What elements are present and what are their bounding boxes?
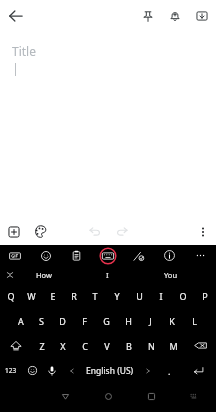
staticText: D [59,315,66,327]
staticText: You [164,270,178,280]
staticText: O [179,290,187,302]
button[interactable]: Q [0,283,21,308]
staticText: N [148,340,155,352]
button[interactable]: A [10,308,31,333]
button[interactable]: T [84,283,106,308]
staticText: V [104,340,110,352]
button[interactable]: Z [31,333,52,358]
button[interactable]: I [76,266,139,283]
staticText: A [18,315,24,327]
button[interactable]: Recents [139,384,163,408]
staticText: I [159,290,163,302]
staticText: Y [114,290,120,302]
button[interactable]: F [73,308,95,333]
staticText: R [71,290,77,302]
button[interactable]: More [185,245,216,266]
button[interactable]: G [95,308,117,333]
staticText: M [169,340,178,352]
button[interactable]: H [117,308,139,333]
button[interactable]: Shift [0,333,31,358]
staticText: F [82,315,87,327]
staticText: . [168,365,171,377]
button[interactable]: N [140,333,162,358]
staticText: Title [12,43,36,59]
button[interactable]: Reminder [161,2,188,29]
button[interactable]: Add [2,220,25,243]
button[interactable]: Voice input [42,358,62,383]
staticText: T [92,290,98,302]
staticText: How [36,270,52,280]
button[interactable]: W [21,283,42,308]
button[interactable]: M [162,333,184,358]
button[interactable]: S [31,308,52,333]
button[interactable]: Keyboard [92,245,123,266]
staticText: 123 [5,366,17,375]
button[interactable]: U [128,283,150,308]
staticText: H [125,315,132,327]
button[interactable]: J [139,308,161,333]
button[interactable]: Back [0,0,31,31]
button[interactable]: English (US) [62,358,158,383]
staticText: K [169,315,175,327]
button[interactable]: Back [53,384,77,408]
button[interactable]: Settings [154,245,185,266]
button[interactable]: R [63,283,84,308]
staticText: X [60,340,66,352]
staticText: W [27,290,36,302]
button[interactable]: Archive [188,2,215,29]
button[interactable]: You [139,266,202,283]
button[interactable]: Pin [134,2,161,29]
staticText: J [149,315,152,327]
staticText: C [82,340,88,352]
staticText: English (US) [86,365,134,377]
button[interactable]: L [183,308,205,333]
button[interactable]: Backspace [184,333,216,358]
button[interactable]: X [52,333,74,358]
button[interactable]: I [150,283,172,308]
button[interactable]: . [158,358,180,383]
staticText: Q [7,290,15,302]
staticText: S [39,315,44,327]
button[interactable]: How [12,266,76,283]
staticText: L [192,315,197,327]
staticText: E [50,290,56,302]
button[interactable]: E [42,283,63,308]
button[interactable]: V [96,333,118,358]
staticText: G [103,315,110,327]
button[interactable]: Undo [83,220,106,243]
button[interactable]: GIF [0,245,30,266]
button[interactable]: Home [96,384,120,408]
button[interactable]: D [52,308,73,333]
button[interactable]: C [74,333,96,358]
button[interactable]: Emoji [22,358,42,383]
button[interactable]: Clipboard [61,245,92,266]
staticText: I [106,270,109,280]
button[interactable]: P [194,283,216,308]
staticText: Z [39,340,45,352]
button[interactable]: Y [106,283,128,308]
button[interactable]: 123 [0,358,22,383]
staticText: B [126,340,132,352]
button[interactable]: Stickers [123,245,154,266]
button[interactable]: Change color [29,220,52,243]
button[interactable]: B [118,333,140,358]
button[interactable]: Enter [180,358,216,383]
button[interactable]: Expand suggestions [0,266,20,283]
button[interactable]: More options [191,220,214,243]
staticText: P [202,290,208,302]
staticText: U [136,290,143,302]
button[interactable]: O [172,283,194,308]
button[interactable]: Emoji [30,245,61,266]
button[interactable]: Change keyboard [187,389,201,403]
button[interactable]: K [161,308,183,333]
button[interactable]: Redo [111,220,134,243]
